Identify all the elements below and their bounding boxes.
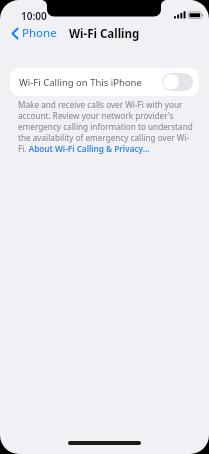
staticText: Wi-Fi Calling on This iPhone <box>19 76 162 89</box>
button[interactable]: Make and receive calls over Wi-Fi with y… <box>18 99 193 154</box>
staticText: Wi-Fi Calling <box>69 26 140 42</box>
button[interactable]: Wi-Fi Calling toggle, off <box>162 73 193 91</box>
button[interactable]: Wi-Fi Calling on This iPhone <box>10 68 199 96</box>
button[interactable]: Phone <box>8 23 60 43</box>
staticText: 10:00 <box>21 9 47 23</box>
staticText: Phone <box>22 25 57 41</box>
